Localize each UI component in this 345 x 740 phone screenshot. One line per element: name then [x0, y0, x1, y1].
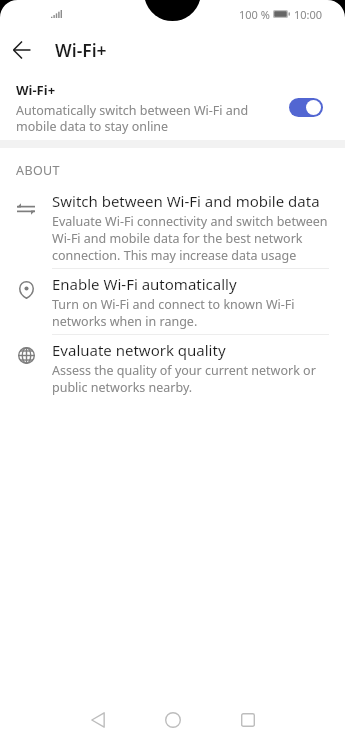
- staticText: Enable Wi-Fi automatically: [52, 274, 237, 294]
- staticText: 10:00: [294, 7, 323, 22]
- staticText: Assess the quality of your current netwo…: [52, 362, 329, 396]
- staticText: Wi-Fi+: [16, 81, 56, 99]
- staticText: ABOUT: [16, 162, 60, 179]
- button[interactable]: Home: [144, 700, 202, 740]
- staticText: Turn on Wi-Fi and connect to known Wi-Fi…: [52, 296, 329, 330]
- button[interactable]: Wi-Fi+: [0, 72, 345, 140]
- button[interactable]: Recents: [219, 700, 277, 740]
- staticText: Evaluate network quality: [52, 340, 226, 360]
- staticText: Switch between Wi-Fi and mobile data: [52, 191, 320, 211]
- button[interactable]: Wi-Fi+ toggle: [289, 98, 323, 117]
- button[interactable]: Back: [0, 28, 44, 72]
- button[interactable]: Enable Wi-Fi automatically: [0, 272, 345, 338]
- staticText: Wi-Fi+: [55, 38, 107, 62]
- button[interactable]: Back: [69, 700, 127, 740]
- staticText: Evaluate Wi-Fi connectivity and switch b…: [52, 213, 329, 264]
- button[interactable]: Switch between Wi-Fi and mobile data: [0, 189, 345, 272]
- staticText: 100 %: [239, 7, 270, 22]
- staticText: Automatically switch between Wi-Fi and m…: [16, 102, 277, 134]
- button[interactable]: Evaluate network quality: [0, 338, 345, 403]
